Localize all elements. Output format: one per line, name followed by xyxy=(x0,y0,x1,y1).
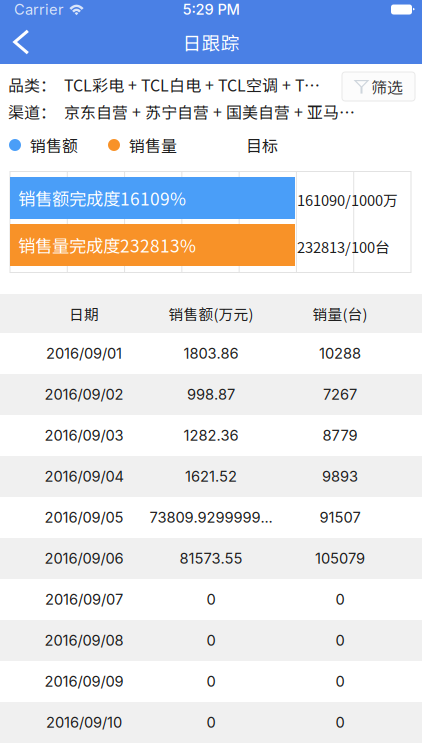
staticText: 销售量完成度232813% xyxy=(18,232,196,258)
staticText: 2016/09/09 xyxy=(44,673,123,690)
staticText: 0 xyxy=(206,673,215,690)
staticText: 日期 xyxy=(69,303,99,324)
staticText: 81573.55 xyxy=(179,550,242,567)
staticText: 0 xyxy=(335,632,344,649)
staticText: 1282.36 xyxy=(183,427,238,444)
staticText: 筛选 xyxy=(371,75,403,98)
staticText: 1621.52 xyxy=(185,468,237,485)
staticText: 0 xyxy=(206,714,215,731)
staticText: 10288 xyxy=(319,345,361,362)
staticText: 9893 xyxy=(322,468,358,485)
staticText: 2016/09/02 xyxy=(44,386,123,403)
staticText: 品类： TCL彩电 + TCL白电 + TCL空调 + TC... xyxy=(8,73,320,96)
staticText: 73809.9299999... xyxy=(149,509,272,526)
staticText: 销售额完成度16109% xyxy=(18,185,186,211)
button[interactable]: 筛选 xyxy=(342,72,415,101)
staticText: 161090/1000万 xyxy=(297,189,398,210)
staticText: 渠道： 京东自营 + 苏宁自营 + 国美自营 + 亚马逊... xyxy=(8,100,356,123)
staticText: 2016/09/01 xyxy=(46,345,122,362)
staticText: 7267 xyxy=(323,386,357,403)
staticText: 1803.86 xyxy=(183,345,238,362)
staticText: 2016/09/06 xyxy=(44,550,123,567)
staticText: 0 xyxy=(335,714,344,731)
staticText: 0 xyxy=(335,673,344,690)
staticText: 0 xyxy=(335,591,344,608)
staticText: 0 xyxy=(206,591,215,608)
staticText: 销量(台) xyxy=(312,303,367,324)
staticText: 105079 xyxy=(315,550,365,567)
staticText: 2016/09/10 xyxy=(46,714,122,731)
staticText: 0 xyxy=(206,632,215,649)
staticText: 5:29 PM xyxy=(182,1,239,18)
button[interactable]: Back xyxy=(0,20,45,64)
staticText: 2016/09/08 xyxy=(44,632,123,649)
staticText: 销售量 xyxy=(129,133,177,157)
staticText: Carrier xyxy=(14,1,64,18)
staticText: 目标 xyxy=(246,133,278,157)
staticText: 销售额 xyxy=(30,133,78,157)
staticText: 日跟踪 xyxy=(182,28,239,55)
staticText: 销售额(万元) xyxy=(168,303,253,324)
staticText: 8779 xyxy=(322,427,357,444)
staticText: 2016/09/07 xyxy=(45,591,123,608)
staticText: 2016/09/05 xyxy=(44,509,123,526)
staticText: 232813/100台 xyxy=(297,236,390,257)
staticText: 2016/09/03 xyxy=(44,427,123,444)
staticText: 2016/09/04 xyxy=(44,468,123,485)
staticText: 998.87 xyxy=(187,386,235,403)
staticText: 91507 xyxy=(319,509,360,526)
